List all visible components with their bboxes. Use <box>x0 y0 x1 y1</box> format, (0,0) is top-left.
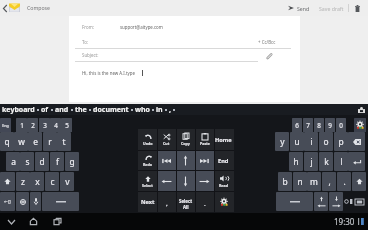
button[interactable]: in <box>156 105 163 115</box>
button[interactable]: h <box>289 152 303 171</box>
button[interactable]: i <box>304 132 318 151</box>
button[interactable] <box>16 192 29 211</box>
button[interactable]: j <box>304 152 318 171</box>
staticText: j <box>310 156 313 167</box>
button[interactable]: Keyboard settings <box>357 106 365 114</box>
button[interactable]: n <box>293 172 307 191</box>
button[interactable]: 9 <box>325 118 335 132</box>
button[interactable]: of <box>41 105 49 115</box>
button[interactable]: y <box>275 132 289 151</box>
button[interactable]: w <box>14 132 28 151</box>
button[interactable] <box>157 171 176 192</box>
button[interactable]: Delete <box>352 2 363 14</box>
button[interactable]: Back <box>4 214 19 229</box>
button[interactable]: Paste <box>195 129 214 150</box>
staticText: i <box>310 136 313 147</box>
button[interactable]: a <box>6 152 20 171</box>
button[interactable]: Recent apps <box>50 214 65 229</box>
button[interactable]: 0 <box>336 118 346 132</box>
staticText: a <box>11 156 16 167</box>
button[interactable] <box>195 150 214 171</box>
button[interactable]: g <box>65 152 79 171</box>
button[interactable]: , <box>169 105 171 115</box>
button[interactable]: . <box>337 172 351 191</box>
button[interactable]: Cut <box>157 129 176 150</box>
button[interactable]: , <box>322 172 336 191</box>
button[interactable]: x <box>30 172 44 191</box>
button[interactable]: 6 <box>292 118 302 132</box>
button[interactable]: k <box>319 152 333 171</box>
button[interactable] <box>42 192 79 211</box>
button[interactable] <box>176 150 195 171</box>
button[interactable]: 4 <box>50 118 61 132</box>
button[interactable] <box>352 172 366 191</box>
button[interactable] <box>348 152 365 171</box>
staticText: 9 <box>328 121 332 130</box>
button[interactable]: l <box>334 152 348 171</box>
button[interactable]: s <box>20 152 34 171</box>
button[interactable]: Copy <box>176 129 195 150</box>
button[interactable]: v <box>60 172 74 191</box>
button[interactable]: z <box>16 172 30 191</box>
button[interactable]: Select <box>138 171 157 192</box>
button[interactable] <box>30 192 41 211</box>
button[interactable]: End <box>214 150 233 171</box>
button[interactable]: 2 <box>27 118 38 132</box>
button[interactable]: b <box>278 172 292 191</box>
button[interactable] <box>157 150 176 171</box>
button[interactable]: who <box>135 105 150 115</box>
button[interactable]: e <box>28 132 42 151</box>
button[interactable]: 1 <box>16 118 27 132</box>
button[interactable]: d <box>35 152 49 171</box>
staticText: q <box>4 136 10 147</box>
button[interactable]: 8 <box>314 118 324 132</box>
button[interactable]: o <box>319 132 333 151</box>
staticText: of <box>41 105 49 115</box>
staticText: To: <box>82 39 88 45</box>
button[interactable]: Save draft <box>319 2 344 14</box>
button[interactable]: m <box>307 172 321 191</box>
button[interactable]: Next <box>138 191 157 212</box>
button[interactable]: Redo <box>138 150 157 171</box>
button[interactable]: Eng <box>0 118 11 132</box>
button[interactable]: 5 <box>61 118 72 132</box>
button[interactable] <box>329 192 343 211</box>
button[interactable]: Back <box>0 1 10 15</box>
button[interactable]: c <box>45 172 59 191</box>
button[interactable]: , <box>157 191 176 212</box>
staticText: 0 <box>339 121 343 130</box>
button[interactable] <box>348 132 365 151</box>
button[interactable]: + Cc/Bcc <box>258 37 276 46</box>
button[interactable]: ←[] <box>0 192 15 211</box>
button[interactable] <box>0 172 15 191</box>
button[interactable]: Undo <box>138 129 157 150</box>
button[interactable]: u <box>290 132 304 151</box>
button[interactable]: Read <box>214 171 233 192</box>
button[interactable]: q <box>0 132 14 151</box>
button[interactable]: t <box>57 132 71 151</box>
staticText: From: <box>82 24 94 30</box>
staticText: Next <box>141 198 155 206</box>
button[interactable]: and <box>55 105 69 115</box>
button[interactable]: 7 <box>303 118 313 132</box>
button[interactable]: keyboard <box>2 105 35 115</box>
button[interactable] <box>314 192 328 211</box>
button[interactable]: r <box>43 132 57 151</box>
button[interactable] <box>176 171 195 192</box>
button[interactable]: Send <box>288 2 310 14</box>
button[interactable]: Attach file <box>264 51 274 61</box>
button[interactable]: p <box>334 132 348 151</box>
staticText: Home <box>215 136 232 144</box>
button[interactable]: the <box>75 105 87 115</box>
button[interactable] <box>354 118 366 132</box>
button[interactable]: document <box>93 105 129 115</box>
button[interactable]: Select <box>176 191 195 212</box>
button[interactable]: Home <box>214 129 233 150</box>
button[interactable] <box>195 171 214 192</box>
button[interactable] <box>214 191 233 212</box>
button[interactable] <box>276 192 313 211</box>
button[interactable]: 3 <box>39 118 50 132</box>
button[interactable]: f <box>50 152 64 171</box>
button[interactable]: . <box>195 191 214 212</box>
button[interactable]: Home <box>26 214 41 229</box>
